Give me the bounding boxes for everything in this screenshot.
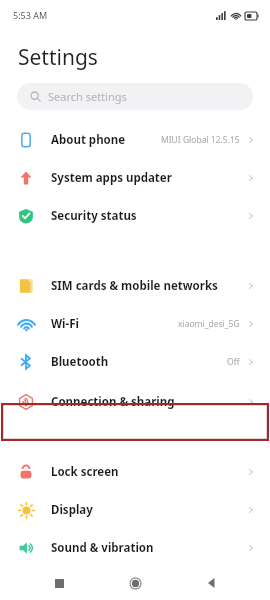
button[interactable]: Wi-Fi: [0, 305, 270, 343]
staticText: Bluetooth: [51, 354, 109, 370]
staticText: System apps updater: [51, 170, 172, 186]
staticText: MIUI Global 12.5.15: [161, 134, 240, 146]
button[interactable]: System apps updater: [0, 159, 270, 197]
button[interactable]: Recents: [41, 566, 77, 600]
staticText: Display: [51, 502, 93, 518]
button[interactable]: Security status: [0, 197, 270, 235]
staticText: Lock screen: [51, 464, 119, 480]
button[interactable]: Back: [194, 566, 230, 600]
button[interactable]: Lock screen: [0, 453, 270, 491]
staticText: Search settings: [48, 89, 127, 104]
button[interactable]: SIM cards & mobile networks: [0, 267, 270, 305]
staticText: Off: [227, 356, 240, 368]
button[interactable]: Home: [117, 566, 153, 600]
staticText: 5:53 AM: [13, 9, 48, 21]
staticText: xiaomi_desi_5G: [178, 318, 240, 330]
staticText: Wi-Fi: [51, 316, 79, 332]
button[interactable]: Connection & sharing: [0, 383, 270, 421]
button[interactable]: About phone: [0, 121, 270, 159]
staticText: About phone: [51, 132, 126, 148]
button[interactable]: Sound & vibration: [0, 529, 270, 567]
staticText: Settings: [18, 43, 98, 72]
button[interactable]: Search settings: [17, 83, 253, 110]
staticText: Sound & vibration: [51, 540, 154, 556]
button[interactable]: Bluetooth: [0, 343, 270, 381]
button[interactable]: Display: [0, 491, 270, 529]
staticText: Security status: [51, 208, 137, 224]
staticText: SIM cards & mobile networks: [51, 278, 218, 294]
staticText: Connection & sharing: [51, 394, 175, 410]
